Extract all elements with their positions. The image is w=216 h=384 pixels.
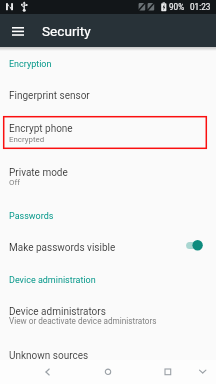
button[interactable] <box>0 230 216 262</box>
button[interactable] <box>3 116 207 149</box>
staticText: Fingerprint sensor <box>9 90 90 102</box>
button[interactable]: Home <box>88 360 128 384</box>
staticText: 90% <box>169 2 185 12</box>
staticText: Device administration <box>9 275 96 286</box>
staticText: Device administrators <box>9 306 106 318</box>
staticText: Off <box>9 178 20 187</box>
button[interactable] <box>0 295 216 336</box>
staticText: Private mode <box>9 167 68 179</box>
staticText: Make passwords visible <box>9 242 116 254</box>
staticText: 01:23 <box>190 2 211 12</box>
staticText: Passwords <box>9 211 54 222</box>
staticText: Encrypted <box>9 135 45 144</box>
button[interactable]: Recent apps <box>148 360 188 384</box>
button[interactable] <box>0 78 216 110</box>
staticText: Security <box>42 23 91 39</box>
button[interactable]: Back <box>28 360 68 384</box>
button[interactable]: Hide navigation bar <box>186 360 216 384</box>
button[interactable]: Open navigation drawer <box>5 18 31 44</box>
staticText: View or deactivate device administrators <box>9 316 157 326</box>
staticText: Encrypt phone <box>9 123 73 135</box>
staticText: Encryption <box>9 59 52 70</box>
button[interactable] <box>0 155 216 196</box>
staticText: Unknown sources <box>9 350 89 362</box>
button[interactable] <box>0 338 216 362</box>
